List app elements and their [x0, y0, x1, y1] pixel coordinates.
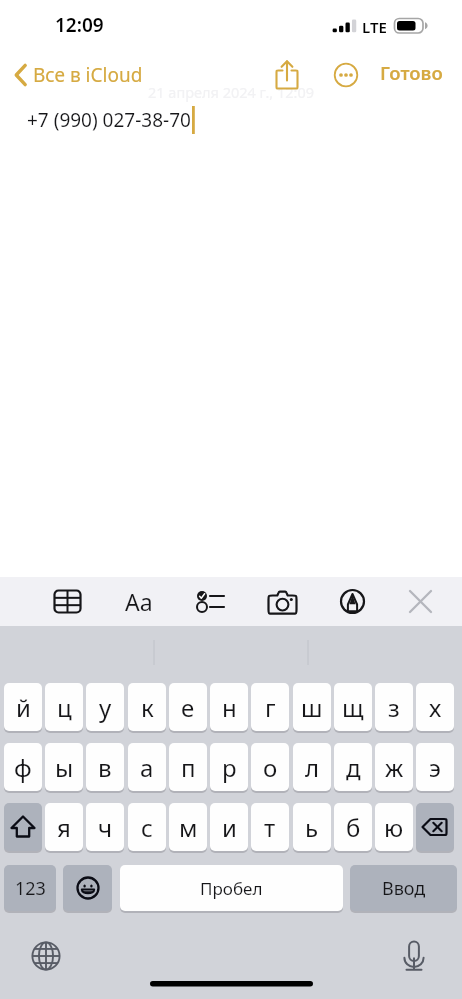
- staticText: я: [57, 811, 71, 844]
- button[interactable]: м: [169, 803, 207, 851]
- staticText: х: [429, 691, 442, 724]
- button[interactable]: Сменить язык: [26, 936, 66, 976]
- staticText: ь: [305, 811, 319, 844]
- button[interactable]: п: [169, 743, 207, 791]
- button[interactable]: щ: [334, 683, 372, 731]
- staticText: с: [141, 811, 153, 844]
- staticText: д: [346, 751, 361, 784]
- staticText: в: [98, 751, 112, 784]
- button[interactable]: г: [251, 683, 289, 731]
- staticText: ф: [14, 751, 32, 784]
- button[interactable]: б: [334, 803, 372, 851]
- staticText: 12:09: [55, 12, 104, 38]
- button[interactable]: в: [86, 743, 124, 791]
- staticText: б: [346, 811, 361, 844]
- staticText: н: [222, 691, 237, 724]
- button[interactable]: е: [169, 683, 207, 731]
- button[interactable]: Готово: [374, 51, 449, 94]
- staticText: Все в iCloud: [33, 62, 143, 88]
- button[interactable]: Закрыть: [401, 583, 439, 620]
- staticText: ж: [385, 751, 404, 784]
- staticText: й: [16, 691, 31, 724]
- staticText: з: [388, 691, 400, 724]
- staticText: ю: [384, 811, 404, 844]
- staticText: Ввод: [382, 876, 426, 901]
- button[interactable]: ш: [293, 683, 331, 731]
- staticText: м: [179, 811, 198, 844]
- staticText: р: [222, 751, 237, 784]
- button[interactable]: ю: [375, 803, 413, 851]
- button[interactable]: л: [293, 743, 331, 791]
- button[interactable]: д: [334, 743, 372, 791]
- button[interactable]: и: [210, 803, 248, 851]
- staticText: LTE: [362, 17, 387, 37]
- button[interactable]: Список: [191, 583, 229, 620]
- button[interactable]: р: [210, 743, 248, 791]
- button[interactable]: Эмодзи: [63, 865, 112, 911]
- button[interactable]: э: [416, 743, 454, 791]
- staticText: у: [99, 691, 112, 724]
- button[interactable]: ы: [45, 743, 83, 791]
- button[interactable]: к: [128, 683, 166, 731]
- button[interactable]: ч: [86, 803, 124, 851]
- button[interactable]: а: [128, 743, 166, 791]
- button[interactable]: у: [86, 683, 124, 731]
- staticText: ы: [55, 751, 74, 784]
- button[interactable]: Ввод: [350, 865, 457, 911]
- staticText: э: [429, 751, 441, 784]
- button[interactable]: Формат: [120, 583, 158, 620]
- staticText: л: [305, 751, 320, 784]
- button[interactable]: Все в iCloud: [10, 59, 147, 91]
- button[interactable]: т: [251, 803, 289, 851]
- staticText: ц: [57, 691, 72, 724]
- button[interactable]: о: [251, 743, 289, 791]
- button[interactable]: н: [210, 683, 248, 731]
- staticText: г: [265, 691, 276, 724]
- button[interactable]: ь: [293, 803, 331, 851]
- staticText: ч: [98, 811, 113, 844]
- button[interactable]: Разметка: [333, 583, 371, 620]
- staticText: ш: [301, 691, 323, 724]
- staticText: +7 (990) 027-38-70: [27, 107, 191, 133]
- staticText: 21 апреля 2024 г., 12:09: [0, 82, 462, 102]
- staticText: 123: [15, 876, 46, 901]
- button[interactable]: ж: [375, 743, 413, 791]
- button[interactable]: Пробел: [120, 865, 343, 911]
- button[interactable]: Камера: [263, 583, 301, 620]
- button[interactable]: Ещё: [328, 57, 364, 93]
- button[interactable]: 123: [4, 865, 56, 911]
- staticText: к: [141, 691, 154, 724]
- button[interactable]: Поделиться: [269, 56, 305, 92]
- button[interactable]: Shift: [4, 803, 42, 851]
- button[interactable]: х: [416, 683, 454, 731]
- button[interactable]: Диктовка: [394, 936, 434, 976]
- button[interactable]: ц: [45, 683, 83, 731]
- staticText: о: [263, 751, 278, 784]
- button[interactable]: з: [375, 683, 413, 731]
- button[interactable]: Таблица: [48, 583, 86, 620]
- staticText: а: [140, 751, 154, 784]
- staticText: и: [222, 811, 237, 844]
- staticText: Пробел: [200, 877, 263, 900]
- staticText: Aa: [125, 586, 153, 617]
- button[interactable]: й: [4, 683, 42, 731]
- staticText: щ: [342, 691, 364, 724]
- button[interactable]: с: [128, 803, 166, 851]
- staticText: п: [181, 751, 196, 784]
- button[interactable]: ф: [4, 743, 42, 791]
- button[interactable]: я: [45, 803, 83, 851]
- staticText: т: [264, 811, 276, 844]
- button[interactable]: Удалить: [416, 803, 454, 851]
- staticText: е: [181, 691, 195, 724]
- staticText: Готово: [380, 60, 443, 85]
